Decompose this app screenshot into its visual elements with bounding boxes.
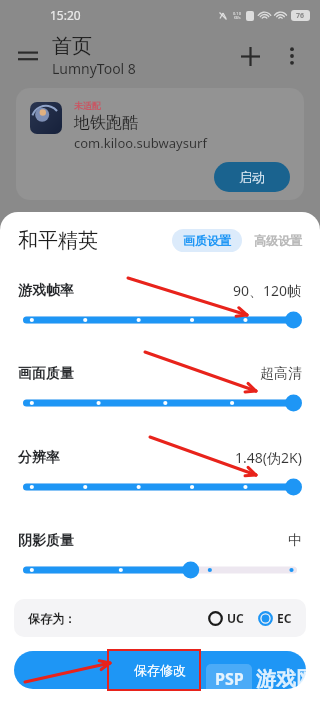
staticText: 中	[288, 532, 302, 550]
staticText: 保存为：	[28, 611, 76, 626]
staticText: 未适配	[74, 100, 101, 111]
staticText: PSP	[215, 668, 244, 690]
staticText: 15:20	[50, 7, 81, 23]
button[interactable]: EC	[258, 610, 292, 626]
staticText: 游戏帧率	[18, 282, 74, 300]
button[interactable]: More options	[274, 38, 310, 74]
staticText: 保存修改	[134, 662, 186, 678]
button[interactable]: 保存修改	[14, 651, 306, 689]
staticText: 首页	[52, 34, 92, 59]
button[interactable]: UC	[208, 610, 244, 626]
staticText: 0.10	[233, 11, 241, 16]
staticText: 1.48(伪2K)	[235, 448, 302, 467]
staticText: UC	[227, 610, 244, 626]
staticText: 画面质量	[18, 365, 74, 383]
staticText: 90、120帧	[233, 281, 302, 300]
button[interactable]: 画质设置	[183, 233, 231, 248]
staticText: 启动	[239, 169, 265, 185]
button[interactable]: 高级设置	[254, 233, 302, 248]
staticText: 地铁跑酷	[74, 113, 138, 133]
staticText: 画质设置	[183, 233, 231, 248]
staticText: 76	[296, 11, 305, 21]
button[interactable]: 启动	[214, 162, 290, 192]
staticText: 阴影质量	[18, 532, 74, 550]
staticText: 游戏网	[256, 667, 316, 692]
button[interactable]: 未适配	[16, 88, 304, 200]
staticText: KB/s	[234, 16, 241, 20]
staticText: 高级设置	[254, 233, 302, 248]
button[interactable]: Menu	[8, 36, 48, 76]
staticText: 和平精英	[18, 228, 98, 253]
staticText: EC	[277, 610, 292, 626]
button[interactable]: Add	[232, 38, 268, 74]
staticText: 超高清	[260, 365, 302, 383]
staticText: LumnyTool 8	[52, 59, 136, 78]
staticText: com.kiloo.subwaysurf	[74, 134, 207, 152]
staticText: 分辨率	[18, 449, 60, 467]
